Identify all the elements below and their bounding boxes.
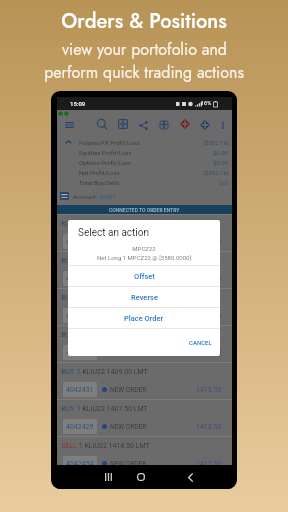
button[interactable]: Home (132, 468, 150, 486)
staticText: perform quick trading actions (44, 61, 244, 84)
staticText: 1413.50 (196, 349, 222, 357)
staticText: Place Order (124, 314, 164, 323)
button[interactable]: BUY (57, 251, 232, 288)
button[interactable]: SELL (57, 436, 232, 473)
staticText: Orders & Positions (61, 7, 227, 36)
staticText: NEW ORDER (110, 275, 147, 283)
staticText: Total Buy/Sells (79, 179, 120, 186)
staticText: NEW ORDER (110, 386, 147, 394)
staticText: CANCEL (189, 339, 212, 346)
staticText: 15:09 (70, 100, 86, 107)
button[interactable]: BUY (57, 214, 232, 251)
staticText: 1 KLIU22 1410.50 LMT (75, 294, 148, 302)
button[interactable]: Search (95, 117, 109, 131)
staticText: 4042429 (66, 423, 94, 431)
button[interactable]: BUY (57, 288, 232, 325)
staticText: 4042435 (66, 275, 94, 283)
staticText: view your portofolio and (62, 38, 227, 61)
staticText: $0.00 (213, 159, 229, 166)
button[interactable]: Order ticket (116, 117, 130, 131)
staticText: 1413.50 (196, 275, 222, 283)
button[interactable]: Account: (60, 187, 232, 205)
staticText: BUY (61, 368, 75, 376)
staticText: 4042432 (66, 349, 94, 357)
staticText: NEW ORDER (110, 460, 147, 468)
staticText: BUY (61, 405, 75, 413)
button[interactable]: BUY (57, 362, 232, 399)
button[interactable]: Offset (68, 266, 220, 286)
button[interactable]: Options Profit/Loss (57, 157, 232, 167)
button[interactable]: Futures/FX Profit/Loss (57, 137, 232, 147)
staticText: 1 KLIU22 1418.50 LMT (77, 442, 150, 450)
staticText: NEW ORDER (110, 349, 147, 357)
staticText: ($352.16) (203, 139, 229, 146)
staticText: Offset (134, 272, 155, 281)
staticText: 1 KLIU22 1407.50 LMT (75, 405, 148, 413)
staticText: 4042433 (66, 312, 94, 320)
staticText: Options Profit/Loss (79, 159, 132, 166)
staticText: BUY (61, 220, 75, 228)
staticText: 1 KLIU22 1409.00 LMT (75, 368, 148, 376)
staticText: NEW ORDER (110, 423, 147, 431)
button[interactable]: Share (136, 118, 150, 132)
staticText: 2/0 (219, 179, 229, 186)
staticText: Select an action (78, 227, 150, 239)
button[interactable]: Net Profit/Loss (57, 167, 232, 177)
staticText: 1413.50 (196, 386, 222, 394)
staticText: 4042437 (66, 238, 94, 246)
button[interactable]: Menu (62, 118, 76, 132)
staticText: BUY (61, 257, 75, 265)
button[interactable]: Sell (178, 117, 192, 131)
staticText: SELL (61, 442, 77, 450)
staticText: Reverse (131, 293, 158, 302)
staticText: 16% (201, 100, 212, 106)
staticText: Equities Profit/Loss (79, 149, 132, 156)
button[interactable]: Recent apps (99, 468, 117, 486)
staticText: 4042454 (66, 460, 94, 468)
button[interactable]: BUY (57, 325, 232, 362)
staticText: ($352.16) (203, 169, 229, 176)
staticText: NEW ORDER (110, 312, 147, 320)
staticText: 1413.50 (196, 460, 222, 468)
staticText: CONNECTED TO ORDER ENTRY (109, 207, 180, 213)
staticText: MPCZ22 (68, 245, 220, 252)
staticText: Net Long 1 MPCZ22 @ [3580.0000] (68, 254, 220, 261)
button[interactable]: Chart (157, 118, 171, 132)
button[interactable]: Back (181, 468, 199, 486)
staticText: 1413.50 (196, 312, 222, 320)
button[interactable]: BUY (57, 399, 232, 436)
staticText: 1413.50 (196, 423, 222, 431)
staticText: 4042431 (66, 386, 94, 394)
staticText: BUY (61, 294, 75, 302)
staticText: $0.00 (213, 149, 229, 156)
staticText: BUY (61, 331, 75, 339)
button[interactable]: Total Buy/Sells (57, 177, 232, 187)
button[interactable]: Reverse (68, 287, 220, 307)
button[interactable]: Equities Profit/Loss (57, 147, 232, 157)
button[interactable]: Place Order (68, 308, 220, 328)
staticText: 1 KLIU22 1411.50 LMT (75, 257, 148, 265)
staticText: 1413.50 (196, 238, 222, 246)
staticText: Futures/FX Profit/Loss (79, 139, 140, 146)
button[interactable]: Buy (198, 118, 212, 132)
button[interactable]: More options (216, 118, 230, 132)
staticText: Account: (73, 193, 99, 200)
button[interactable]: CANCEL (186, 336, 215, 349)
staticText: 30487 (99, 193, 116, 200)
staticText: Net Profit/Loss (79, 169, 120, 176)
